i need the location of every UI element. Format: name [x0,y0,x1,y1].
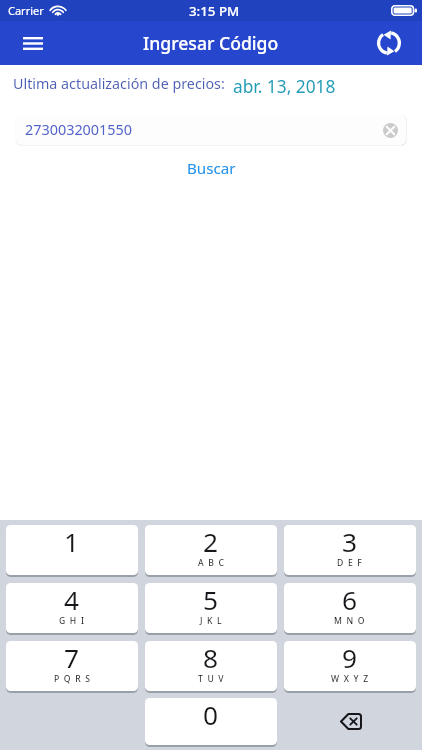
staticText: 6 [342,583,358,618]
button[interactable]: Sync prices [367,21,411,65]
staticText: PQRS [54,673,95,685]
staticText: TUV [198,673,229,685]
button[interactable]: 5 [145,583,277,633]
button[interactable]: 0 [145,698,277,745]
staticText: 3:15 PM [189,2,240,20]
staticText: 0 [203,698,219,733]
staticText: 9 [342,641,358,676]
staticText: abr. 13, 2018 [233,75,336,99]
button[interactable]: 4 [6,583,138,633]
staticText: JKL [200,615,227,627]
button[interactable]: Backspace [284,698,416,745]
staticText: 3 [342,525,358,560]
button[interactable]: 7 [6,641,138,691]
staticText: Ingresar Código [143,31,279,55]
staticText: 5 [203,583,219,618]
staticText: 7 [64,641,80,676]
staticText: MNO [334,615,370,627]
staticText: Buscar [187,158,236,179]
staticText: Carrier [8,3,44,18]
button[interactable]: 1 [6,525,138,575]
button[interactable]: 2 [145,525,277,575]
staticText: ABC [198,557,229,569]
button[interactable]: 6 [284,583,416,633]
button[interactable]: Open navigation menu [11,21,55,65]
button[interactable]: 9 [284,641,416,691]
staticText: 8 [203,641,219,676]
button[interactable]: 2730032001550 [16,115,406,145]
staticText: 1 [64,525,80,560]
button[interactable]: 8 [145,641,277,691]
staticText: GHI [59,615,89,627]
button[interactable]: Buscar [187,158,236,179]
staticText: 4 [64,583,80,618]
staticText: WXYZ [331,673,373,685]
staticText: 2 [203,525,219,560]
button[interactable]: Clear text [380,120,400,140]
staticText: 2730032001550 [25,120,133,140]
staticText: DEF [337,557,367,569]
staticText: Ultima actualización de precios: [13,74,225,93]
button[interactable]: 3 [284,525,416,575]
